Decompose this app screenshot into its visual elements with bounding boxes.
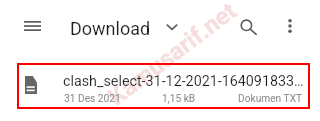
staticText: 1,15 kB xyxy=(162,93,196,105)
staticText: Download xyxy=(70,18,151,39)
staticText: 31 Des 2021 xyxy=(64,93,121,105)
button[interactable]: Navigation menu xyxy=(16,10,48,42)
staticText: Dokumen TXT xyxy=(238,93,303,105)
button[interactable]: More options xyxy=(275,11,305,41)
button[interactable]: Search xyxy=(233,12,265,42)
staticText: Kamusarif.net xyxy=(103,0,242,111)
staticText: clash_select-31-12-2021-164091833… xyxy=(63,73,304,90)
button[interactable]: Sort options xyxy=(158,13,186,41)
button[interactable]: clash_select-31-12-2021-164091833… xyxy=(17,63,310,109)
